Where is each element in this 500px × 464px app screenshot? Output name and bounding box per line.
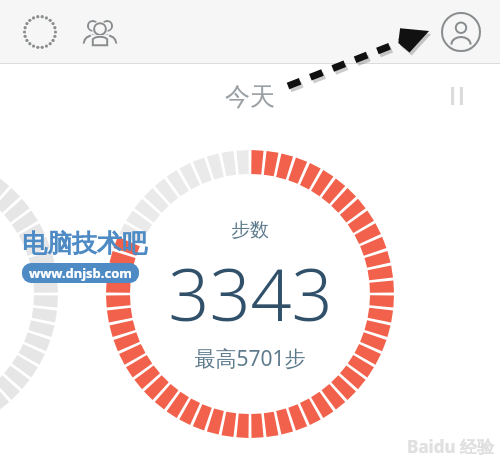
button[interactable]: Profile [436, 7, 486, 57]
staticText: www.dnjsb.com [29, 264, 132, 282]
staticText: 步数 [231, 218, 269, 242]
staticText: 最高5701步 [194, 344, 306, 373]
button[interactable]: Activity [16, 8, 64, 56]
button[interactable]: Friends [76, 8, 124, 56]
button[interactable]: Pause [440, 79, 474, 113]
staticText: Baidu 经验 [407, 435, 494, 458]
button[interactable]: 今天 [217, 77, 283, 116]
staticText: 电脑技术吧 [22, 228, 147, 259]
staticText: 今天 [225, 81, 275, 112]
staticText: 3343 [168, 244, 333, 342]
